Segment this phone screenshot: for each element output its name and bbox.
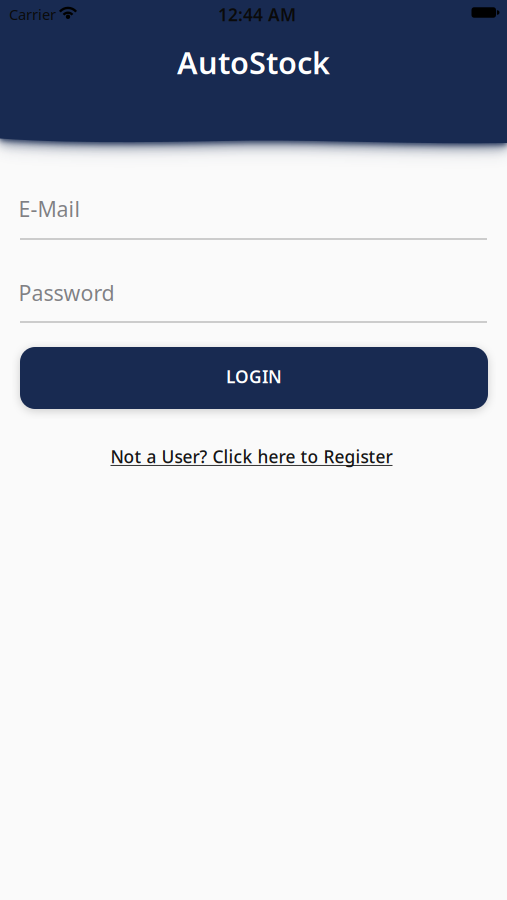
staticText: Not a User? Click here to Register bbox=[110, 445, 392, 468]
staticText: 12:44 AM bbox=[218, 3, 296, 26]
staticText: AutoStock bbox=[177, 42, 330, 83]
button[interactable]: Not a User? Click here to Register bbox=[110, 445, 392, 468]
staticText: Password bbox=[18, 278, 114, 307]
staticText: E-Mail bbox=[18, 194, 80, 223]
button[interactable]: LOGIN bbox=[20, 347, 488, 409]
staticText: LOGIN bbox=[226, 365, 282, 388]
staticText: Carrier bbox=[9, 4, 56, 24]
